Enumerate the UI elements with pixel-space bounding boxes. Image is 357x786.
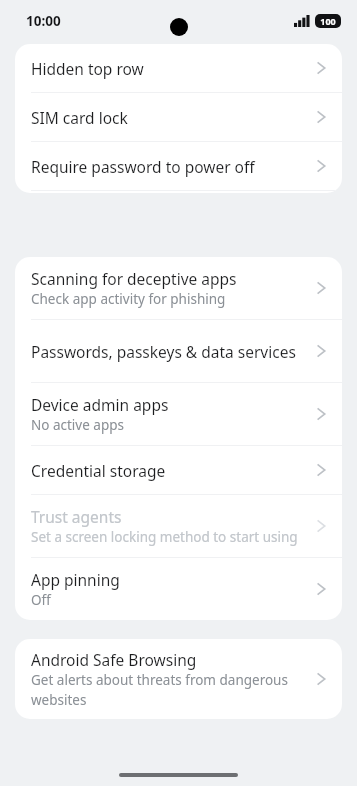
staticText: SIM card lock [31, 107, 128, 128]
staticText: 100 [320, 15, 336, 27]
staticText: Device admin apps [31, 394, 169, 415]
staticText: Off [31, 591, 51, 609]
button[interactable]: SIM card lock [15, 93, 342, 141]
staticText: More security and privacy [57, 54, 275, 79]
button[interactable]: Require password to power off [15, 142, 342, 190]
staticText: Hidden top row [31, 58, 144, 79]
staticText: Require password to power off [31, 156, 255, 177]
button[interactable]: Android Safe Browsing [15, 639, 342, 719]
staticText: 10:00 [26, 12, 61, 30]
button[interactable]: Hidden top row [15, 44, 342, 92]
button[interactable]: Passwords, passkeys & data services [15, 320, 342, 382]
staticText: Set a screen locking method to start usi… [31, 528, 298, 546]
button[interactable]: Back [10, 47, 48, 85]
staticText: No active apps [31, 416, 124, 434]
staticText: Check app activity for phishing [31, 290, 226, 308]
staticText: App pinning [31, 569, 120, 590]
button[interactable]: Scanning for deceptive apps [15, 257, 342, 319]
staticText: Get alerts about threats from dangerous … [31, 671, 306, 709]
staticText: Trust agents [31, 506, 122, 527]
staticText: Scanning for deceptive apps [31, 268, 237, 289]
button[interactable]: Installation sources [15, 191, 342, 193]
button[interactable]: Credential storage [15, 446, 342, 494]
staticText: Credential storage [31, 460, 166, 481]
button[interactable]: Trust agents [15, 495, 342, 557]
button[interactable]: App pinning [15, 558, 342, 620]
staticText: Android Safe Browsing [31, 649, 197, 670]
staticText: Passwords, passkeys & data services [31, 341, 296, 362]
button[interactable]: Device admin apps [15, 383, 342, 445]
